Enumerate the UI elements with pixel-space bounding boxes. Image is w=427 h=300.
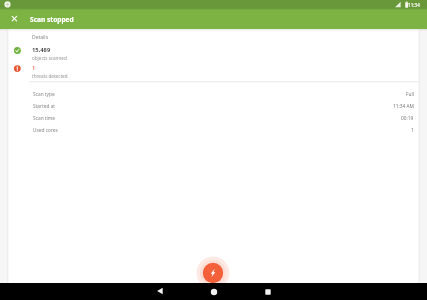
button[interactable] bbox=[261, 285, 275, 299]
staticText: 11:34 bbox=[408, 2, 420, 8]
button[interactable] bbox=[196, 256, 230, 290]
staticText: 1 bbox=[411, 127, 414, 134]
staticText: 1 bbox=[32, 64, 36, 72]
button[interactable] bbox=[7, 12, 21, 26]
staticText: Details bbox=[32, 34, 49, 41]
staticText: threats detected bbox=[32, 73, 68, 79]
staticText: Scan time bbox=[33, 115, 55, 122]
staticText: 00:19 bbox=[401, 115, 414, 122]
staticText: Scan stopped bbox=[30, 15, 74, 24]
button[interactable] bbox=[207, 285, 221, 299]
staticText: Scan type bbox=[33, 91, 55, 98]
staticText: objects scanned bbox=[32, 55, 67, 61]
button[interactable] bbox=[153, 284, 167, 298]
staticText: Used cores bbox=[33, 127, 58, 134]
staticText: Full bbox=[406, 91, 414, 98]
staticText: 11:34 AM bbox=[393, 103, 414, 110]
staticText: Started at bbox=[33, 103, 56, 110]
staticText: 15,489 bbox=[32, 46, 51, 54]
